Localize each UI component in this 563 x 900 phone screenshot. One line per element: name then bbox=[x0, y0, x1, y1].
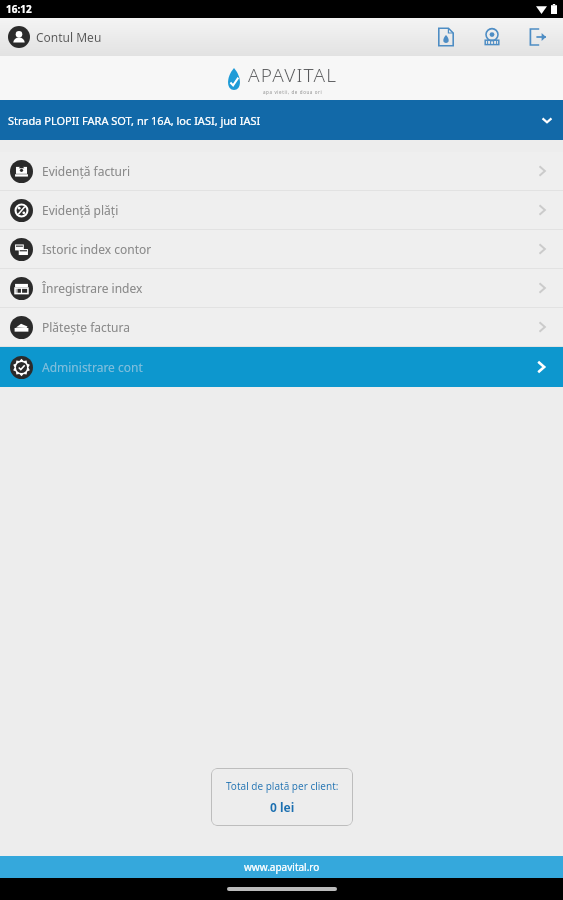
staticText: apa vietii, de doua ori bbox=[263, 89, 323, 95]
staticText: Înregistrare index bbox=[42, 280, 533, 296]
staticText: Evidență plăți bbox=[42, 202, 533, 218]
staticText: Administrare cont bbox=[42, 359, 531, 375]
button[interactable]: Strada PLOPII FARA SOT, nr 16A, loc IASI… bbox=[0, 100, 563, 140]
button[interactable]: Logout bbox=[525, 24, 551, 50]
button[interactable]: Evidență facturi bbox=[0, 152, 563, 190]
staticText: Total de plată per client: bbox=[226, 779, 339, 793]
staticText: Strada PLOPII FARA SOT, nr 16A, loc IASI… bbox=[8, 113, 539, 128]
staticText: APAVITAL bbox=[248, 62, 338, 88]
button[interactable]: Istoric index contor bbox=[0, 230, 563, 268]
button[interactable]: Contor bbox=[479, 24, 505, 50]
button[interactable]: www.apavital.ro bbox=[0, 856, 563, 878]
staticText: www.apavital.ro bbox=[244, 860, 320, 874]
staticText: Plătește factura bbox=[42, 319, 533, 335]
button[interactable]: Evidență plăți bbox=[0, 191, 563, 229]
staticText: 16:12 bbox=[6, 2, 32, 16]
staticText: 0 lei bbox=[270, 799, 295, 815]
staticText: Evidență facturi bbox=[42, 163, 533, 179]
button[interactable]: Total de plată per client: bbox=[211, 768, 353, 826]
button[interactable]: Înregistrare index bbox=[0, 269, 563, 307]
staticText: Contul Meu bbox=[36, 29, 102, 45]
button[interactable]: Administrare cont bbox=[0, 347, 563, 387]
button[interactable]: Contul Meu bbox=[0, 26, 110, 48]
button[interactable]: Facturi bbox=[433, 24, 459, 50]
staticText: Istoric index contor bbox=[42, 241, 533, 257]
button[interactable]: Plătește factura bbox=[0, 308, 563, 346]
